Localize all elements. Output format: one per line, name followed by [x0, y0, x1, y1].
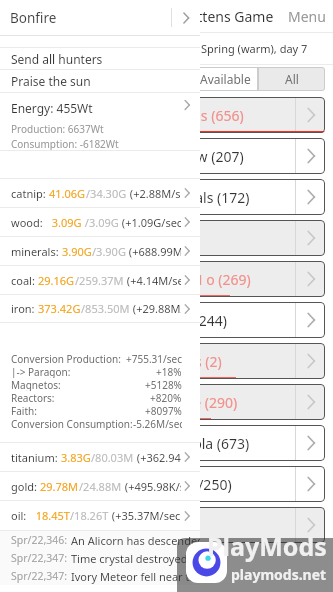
staticText: Magneto: 380k alloy 450k (9/250)	[15, 475, 232, 494]
staticText: Praise the sun	[11, 73, 91, 89]
staticText: (+4.14M/sec)	[124, 273, 181, 288]
staticText: /259.37M	[75, 273, 124, 288]
staticText: 373.42G	[38, 301, 81, 316]
button[interactable]: gold:	[0, 472, 200, 500]
staticText: +820%	[150, 391, 182, 404]
button[interactable]: Send all hunters	[0, 48, 200, 69]
staticText: /853.50M	[81, 301, 130, 316]
staticText: Kittens Game	[185, 7, 274, 26]
staticText: 18.45T	[30, 508, 70, 523]
staticText: Spr/22,347:	[11, 551, 68, 565]
button[interactable]: Menu	[281, 0, 333, 32]
staticText: oil:	[11, 508, 30, 523]
staticText: Production: 6637Wt	[11, 122, 104, 136]
staticText: (+1.09G/sec)	[119, 215, 181, 230]
staticText: wood:	[11, 215, 46, 230]
staticText: Smelter: 3.2M minerals 1.5M o (269)	[15, 270, 251, 289]
staticText: Steamworks: 100k gear blue (290)	[15, 393, 238, 412]
staticText: Energy: 455Wt	[11, 100, 93, 116]
staticText: +5128%	[145, 378, 182, 391]
staticText: titanium:	[11, 450, 61, 465]
button[interactable]: catnip:	[0, 179, 200, 207]
button[interactable]: Smelter: 3.2M minerals 1.5M o (269)	[8, 261, 325, 297]
button[interactable]: Factory: 9.2M titanium 38k pla (673)	[8, 425, 325, 461]
staticText: Consumption: -6182Wt	[11, 137, 119, 150]
staticText: Available	[200, 71, 251, 87]
staticText: Menu	[288, 7, 326, 26]
staticText: (+35.37M/sec)	[109, 508, 181, 523]
staticText: Conversion Production:	[11, 352, 121, 365]
staticText: All	[285, 71, 299, 87]
staticText: /3.90G	[92, 244, 126, 259]
button[interactable]: Accelerator: 12.5k titanium s (2)	[8, 343, 325, 379]
staticText: Spr/22,347:	[11, 569, 68, 583]
staticText: Calciner: 68.2k minerals 30 (244)	[15, 311, 227, 330]
staticText: 29.16G	[38, 273, 75, 288]
staticText: Faith:	[11, 404, 37, 417]
staticText: gold:	[11, 479, 40, 494]
button[interactable]: oil:	[0, 501, 200, 530]
staticText: iron:	[11, 301, 38, 316]
staticText: (+688.99M/sec)	[126, 244, 181, 259]
button[interactable]: Catnip field: 1.2M catnip 4k w (207)	[8, 138, 325, 174]
button[interactable]	[8, 220, 325, 256]
staticText: Accelerator: 12.5k titanium s (2)	[15, 352, 222, 371]
staticText: /3.09G	[82, 215, 119, 230]
staticText: Magnetos:	[11, 378, 61, 391]
button[interactable]: Magneto: 380k alloy 450k (9/250)	[8, 466, 325, 502]
staticText: 3.09G	[46, 215, 82, 230]
button[interactable]: iron:	[0, 295, 200, 322]
staticText: Spr/22,346:	[11, 533, 68, 547]
button[interactable]	[8, 507, 325, 543]
staticText: 41.06G	[49, 186, 86, 201]
staticText: Gather catnip: 2.5M catnip us (656)	[15, 106, 244, 125]
staticText: Ivory Meteor fell near the village, +327…	[71, 569, 200, 584]
button[interactable]: Praise the sun	[0, 70, 200, 92]
staticText: /18.26T	[70, 508, 109, 523]
staticText: playmods.net	[231, 565, 327, 584]
staticText: Spring (warm), day 7	[201, 41, 308, 56]
staticText: Bonfire	[10, 9, 57, 27]
staticText: /34.30G	[86, 186, 127, 201]
staticText: (+29.88M/sec)	[130, 301, 181, 316]
button[interactable]: wood:	[0, 208, 200, 236]
button[interactable]: All	[258, 67, 325, 91]
staticText: minerals:	[11, 244, 62, 259]
button[interactable]: minerals:	[0, 237, 200, 265]
staticText: 3.83G	[61, 450, 91, 465]
staticText: (+362.94K/sec)	[134, 450, 181, 465]
button[interactable]: Available	[192, 67, 258, 91]
staticText: (+495.98K/sec)	[122, 479, 181, 494]
staticText: Reactors:	[11, 391, 55, 404]
staticText: Time crystal destroyed, skipping	[71, 551, 200, 566]
staticText: catnip:	[11, 186, 49, 201]
staticText: +755.31/sec	[126, 352, 182, 365]
button[interactable]: Calciner: 68.2k minerals 30 (244)	[8, 302, 325, 338]
staticText: -5.26M/sec	[133, 417, 182, 430]
staticText: Catnip field: 1.2M catnip 4k w (207)	[15, 147, 244, 166]
staticText: |-> Paragon:	[11, 365, 71, 378]
staticText: An Alicorn has descended upon	[71, 533, 200, 548]
button[interactable]: Bonfire	[0, 0, 200, 35]
staticText: Hut: 12.4k wood 1.2k minerals (172)	[15, 188, 250, 207]
button[interactable]: titanium:	[0, 443, 200, 471]
staticText: 3.90G	[62, 244, 92, 259]
staticText: Conversion Consumption:	[11, 417, 133, 430]
button[interactable]: coal:	[0, 266, 200, 294]
staticText: 29.78M	[40, 479, 79, 494]
staticText: /80.03M	[91, 450, 134, 465]
staticText: +18%	[156, 365, 182, 378]
button[interactable]: Gather catnip: 2.5M catnip us (656)	[8, 97, 325, 133]
staticText: Factory: 9.2M titanium 38k pla (673)	[15, 434, 250, 453]
staticText: Send all hunters	[11, 51, 103, 67]
staticText: PlayMods	[207, 529, 327, 563]
staticText: +8097%	[145, 404, 182, 417]
staticText: (+2.88M/sec)	[127, 186, 181, 201]
staticText: coal:	[11, 273, 38, 288]
button[interactable]: Energy: 455Wt	[0, 93, 200, 150]
staticText: /24.88M	[79, 479, 122, 494]
button[interactable]: Steamworks: 100k gear blue (290)	[8, 384, 325, 420]
button[interactable]: Hut: 12.4k wood 1.2k minerals (172)	[8, 179, 325, 215]
button[interactable]: Next tab	[172, 0, 200, 35]
